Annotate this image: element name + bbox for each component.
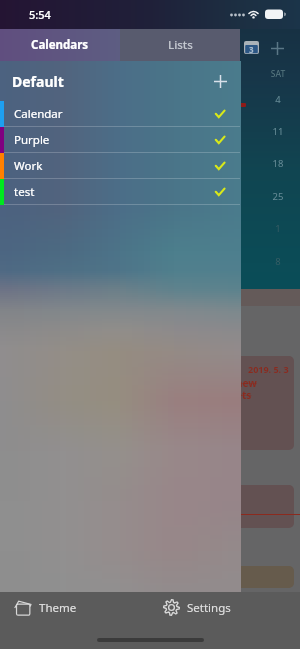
- staticText: test: [14, 184, 35, 200]
- staticText: 5:54: [29, 7, 51, 22]
- button[interactable]: Calendars: [0, 29, 120, 61]
- button[interactable]: Calendar: [0, 101, 240, 127]
- staticText: 4: [258, 93, 298, 106]
- staticText: Lists: [168, 37, 193, 53]
- staticText: 11: [258, 125, 298, 138]
- staticText: 25: [258, 190, 298, 203]
- staticText: Calendars: [31, 37, 89, 53]
- staticText: Purple: [14, 132, 50, 148]
- button[interactable]: Purple: [0, 127, 240, 153]
- staticText: ets: [236, 388, 252, 402]
- button[interactable]: Today: [244, 41, 259, 54]
- button[interactable]: Add event: [268, 39, 287, 58]
- button[interactable]: test: [0, 179, 240, 205]
- staticText: new: [236, 376, 257, 390]
- staticText: 2019. 5. 3: [248, 363, 289, 375]
- staticText: 3: [249, 44, 254, 55]
- button[interactable]: Work: [0, 153, 240, 179]
- button[interactable]: Theme: [0, 592, 150, 649]
- staticText: 18: [258, 157, 298, 170]
- button[interactable]: [182, 485, 294, 528]
- button[interactable]: Lists: [120, 29, 240, 61]
- button[interactable]: [182, 566, 294, 588]
- staticText: 1: [258, 222, 298, 235]
- staticText: Work: [14, 158, 43, 174]
- staticText: Calendar: [14, 106, 63, 122]
- button[interactable]: Add calendar: [203, 64, 237, 98]
- staticText: Settings: [187, 600, 231, 616]
- staticText: 8: [258, 255, 298, 268]
- staticText: Default: [12, 72, 64, 91]
- staticText: SAT: [258, 68, 298, 80]
- button[interactable]: [182, 356, 294, 450]
- staticText: Theme: [39, 600, 77, 616]
- button[interactable]: Settings: [150, 592, 300, 649]
